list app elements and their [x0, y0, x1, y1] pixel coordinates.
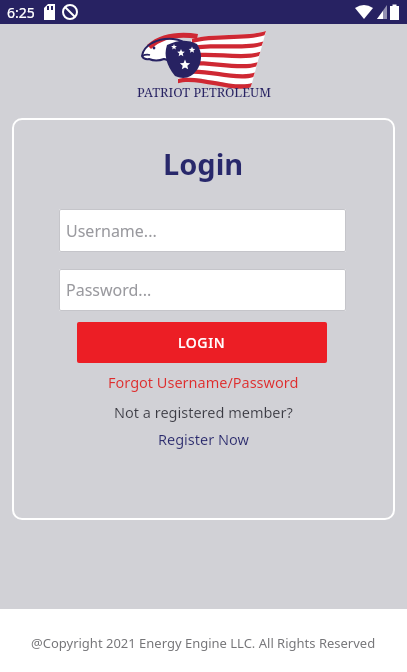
staticText: Login [163, 144, 244, 183]
button[interactable]: Password... [59, 269, 346, 311]
button[interactable]: Username... [59, 209, 346, 252]
staticText: LOGIN [178, 333, 226, 352]
staticText: 6:25 [7, 3, 35, 22]
button[interactable]: Register Now [158, 429, 249, 449]
staticText: Not a registered member? [114, 402, 293, 422]
button[interactable]: Forgot Username/Password [108, 372, 299, 392]
staticText: Password... [66, 279, 152, 301]
staticText: Username... [66, 220, 157, 242]
staticText: @Copyright 2021 Energy Engine LLC. All R… [31, 634, 376, 652]
button[interactable]: LOGIN [77, 322, 327, 363]
staticText: PATRIOT PETROLEUM [137, 84, 271, 101]
